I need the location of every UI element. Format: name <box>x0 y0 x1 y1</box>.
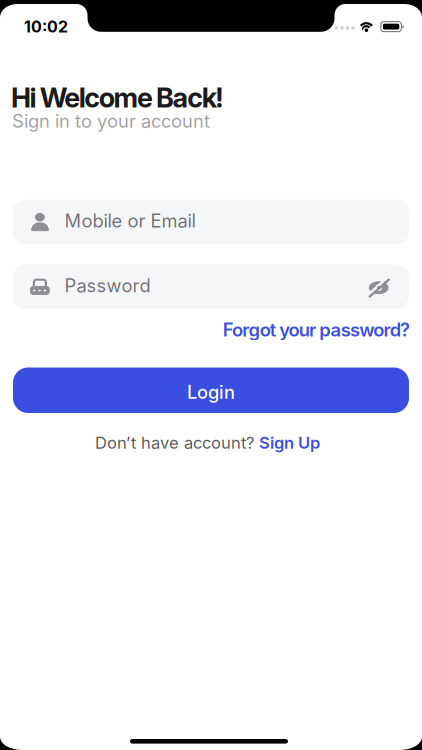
staticText: Login <box>187 381 235 403</box>
button[interactable]: Password <box>13 264 409 309</box>
staticText: Mobile or Email <box>64 210 195 232</box>
button[interactable]: Show password <box>367 276 391 298</box>
staticText: 10:02 <box>24 17 68 36</box>
button[interactable]: Sign Up <box>259 433 320 453</box>
button[interactable]: Mobile or Email <box>13 199 409 244</box>
staticText: Password <box>64 274 150 297</box>
staticText: Forgot your password? <box>223 319 410 341</box>
staticText: Don’t have account? <box>95 433 254 453</box>
staticText: Hi Welcome Back! <box>11 81 223 114</box>
staticText: Sign Up <box>259 433 320 453</box>
button[interactable]: Forgot your password? <box>223 319 410 341</box>
staticText: Sign in to your account <box>12 110 210 132</box>
button[interactable]: Login <box>13 367 409 413</box>
